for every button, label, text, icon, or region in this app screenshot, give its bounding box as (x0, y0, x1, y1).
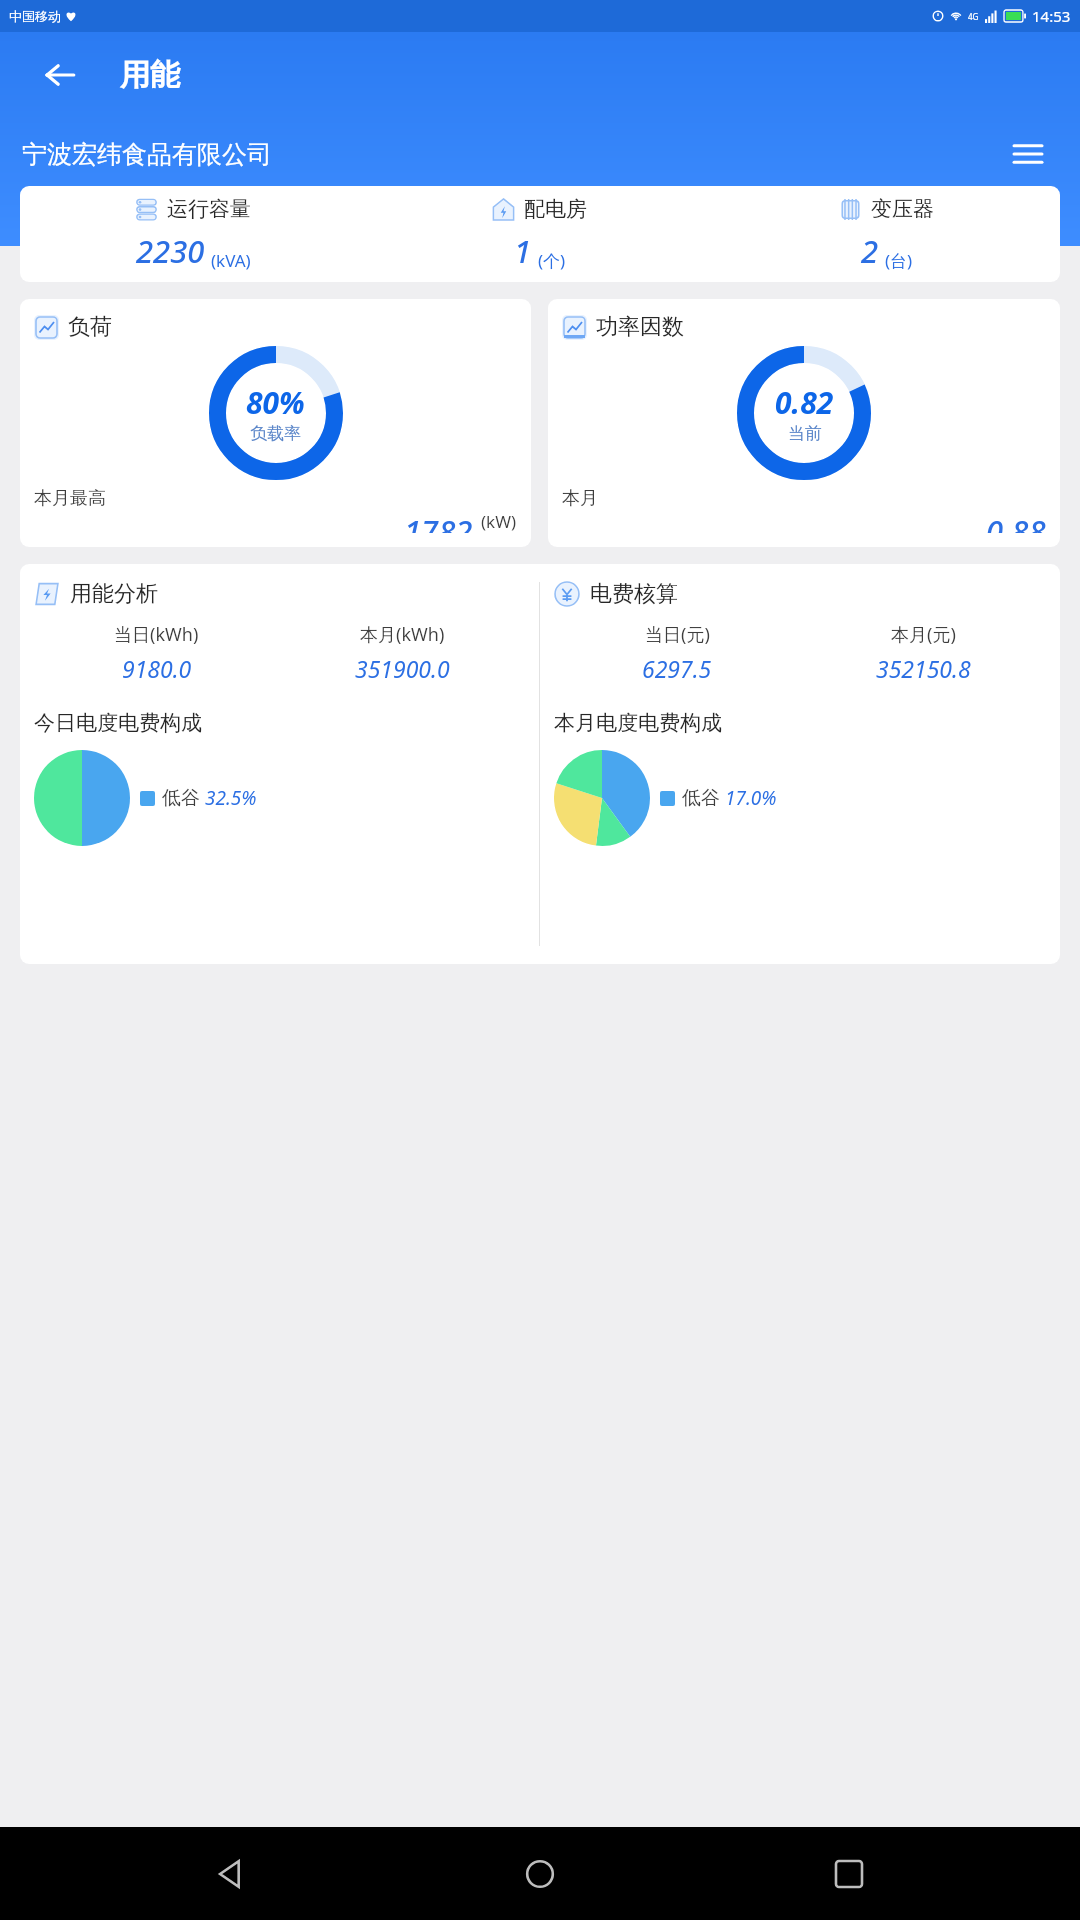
staticText: (台) (885, 249, 913, 272)
staticText: 今日电度电费构成 (34, 710, 202, 736)
staticText: 1 (514, 230, 532, 272)
staticText: 6297.5 (642, 653, 712, 684)
button[interactable]: Back (200, 1843, 262, 1905)
staticText: 0.88 (986, 510, 1046, 533)
staticText: 配电房 (524, 196, 587, 222)
staticText: 负载率 (250, 423, 301, 444)
staticText: 功率因数 (596, 313, 684, 341)
staticText: 14:53 (1032, 6, 1071, 26)
staticText: 当日(元) (645, 622, 710, 647)
button[interactable]: 负荷 (20, 299, 531, 547)
staticText: 宁波宏纬食品有限公司 (22, 139, 1002, 170)
button[interactable]: Back (30, 45, 90, 105)
staticText: 2 (861, 230, 879, 272)
button[interactable]: 运行容量 (20, 186, 1060, 282)
staticText: 351900.0 (355, 653, 450, 684)
staticText: 2230 (136, 230, 205, 272)
staticText: 0.82 (775, 382, 834, 423)
button[interactable]: 用能分析 (20, 564, 1060, 964)
staticText: 本月(元) (891, 622, 956, 647)
staticText: (kVA) (211, 249, 251, 272)
staticText: 4G (968, 11, 979, 22)
staticText: 运行容量 (167, 196, 251, 222)
staticText: 负荷 (68, 313, 112, 341)
staticText: 低谷 (682, 786, 720, 810)
staticText: 中国移动 (9, 8, 61, 24)
button[interactable]: Menu (1002, 128, 1054, 180)
staticText: 本月最高 (34, 487, 106, 510)
button[interactable]: 功率因数 (548, 299, 1060, 547)
staticText: (个) (538, 249, 566, 272)
staticText: 当前 (788, 423, 822, 444)
staticText: 低谷 (162, 786, 200, 810)
staticText: (kW) (481, 510, 517, 533)
staticText: 本月电度电费构成 (554, 710, 722, 736)
button[interactable]: Recents (818, 1843, 880, 1905)
staticText: 本月 (562, 487, 598, 510)
staticText: 32.5% (205, 785, 257, 811)
staticText: 9180.0 (122, 653, 192, 684)
staticText: 电费核算 (590, 580, 678, 608)
staticText: 17.0% (725, 785, 777, 811)
staticText: 用能分析 (70, 580, 158, 608)
staticText: 80% (246, 382, 305, 423)
staticText: 本月(kWh) (360, 622, 445, 647)
staticText: 352150.8 (876, 653, 971, 684)
staticText: 变压器 (871, 196, 934, 222)
staticText: 用能 (120, 56, 180, 94)
staticText: 当日(kWh) (114, 622, 199, 647)
button[interactable]: Home (509, 1843, 571, 1905)
staticText: 1782 (404, 510, 473, 533)
